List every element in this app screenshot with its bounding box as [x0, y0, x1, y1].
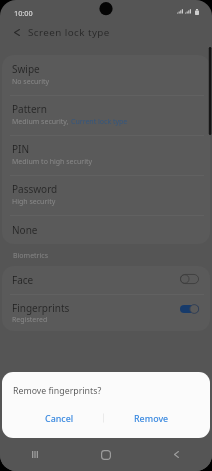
button[interactable]: Fingerprints on — [180, 304, 199, 314]
staticText: Current lock type — [71, 117, 128, 127]
staticText: High security — [12, 197, 56, 207]
button[interactable]: Recents — [0, 438, 70, 471]
staticText: 10:00 — [14, 8, 33, 18]
staticText: Remove — [134, 412, 169, 424]
staticText: No security — [12, 77, 50, 87]
button[interactable]: None — [2, 215, 210, 244]
button[interactable]: Face off — [180, 274, 199, 284]
staticText: Fingerprints — [12, 301, 70, 315]
staticText: Swipe — [12, 62, 40, 76]
staticText: Registered — [12, 315, 48, 325]
staticText: Biometrics — [13, 251, 49, 261]
staticText: Screen lock type — [28, 26, 110, 39]
button[interactable]: Back — [141, 438, 212, 471]
staticText: Cancel — [45, 412, 74, 424]
staticText: Medium to high security — [12, 157, 93, 167]
staticText: Password — [12, 182, 58, 196]
button[interactable]: Navigate up — [6, 21, 27, 43]
staticText: Remove fingerprints? — [13, 385, 102, 397]
staticText: Pattern — [12, 102, 47, 116]
button[interactable]: Remove — [105, 405, 197, 431]
button[interactable]: Swipe — [2, 55, 210, 95]
button[interactable]: Fingerprints — [2, 294, 210, 331]
button[interactable]: Cancel — [13, 405, 105, 431]
button[interactable]: Home — [70, 438, 141, 471]
staticText: Medium security, — [12, 117, 71, 127]
staticText: PIN — [12, 142, 30, 156]
button[interactable]: PIN — [2, 135, 210, 175]
button[interactable]: Password — [2, 175, 210, 215]
staticText: Face — [12, 273, 34, 287]
button[interactable]: Pattern — [2, 95, 210, 135]
staticText: None — [12, 223, 38, 237]
button[interactable]: Face — [2, 266, 210, 294]
